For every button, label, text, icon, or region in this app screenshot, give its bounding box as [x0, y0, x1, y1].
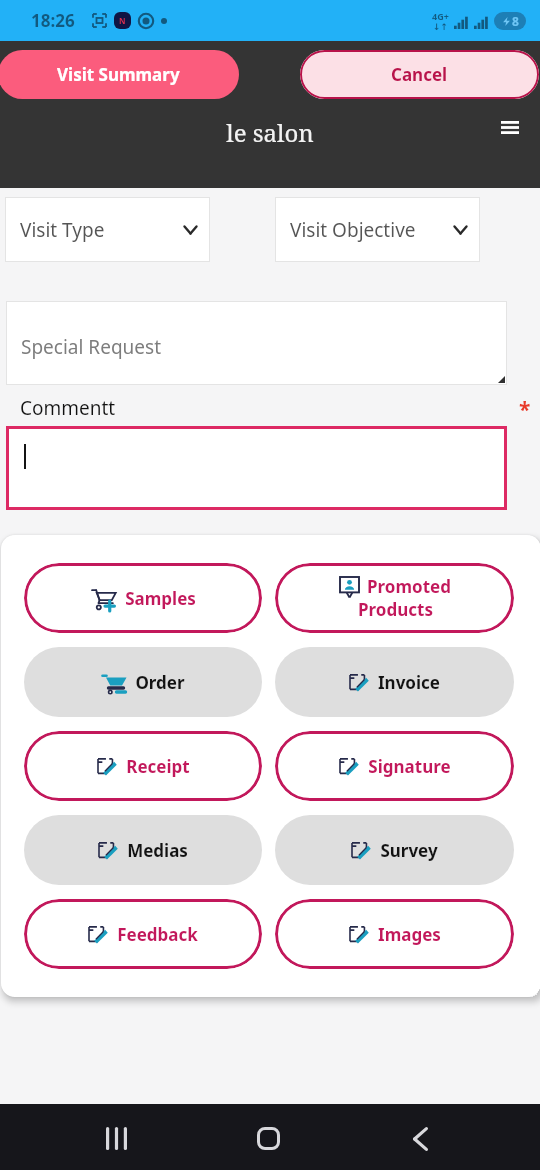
staticText: 18:26	[31, 9, 75, 32]
staticText: Visit Objective	[290, 217, 416, 243]
button[interactable]: Visit Objective	[275, 197, 480, 262]
staticText: Cancel	[391, 63, 448, 86]
button[interactable]: Survey	[275, 815, 514, 885]
button[interactable]: Feedback	[24, 899, 262, 969]
button[interactable]: Back	[396, 1114, 445, 1163]
staticText: Products	[358, 598, 433, 621]
staticText: Receipt	[126, 755, 190, 778]
button[interactable]	[6, 426, 507, 510]
staticText: 8	[512, 13, 519, 29]
staticText: N	[119, 15, 126, 26]
staticText: Signature	[368, 755, 451, 778]
button[interactable]: Samples	[24, 563, 262, 633]
button[interactable]: Signature	[275, 731, 514, 801]
staticText: Visit Type	[20, 217, 105, 243]
staticText: Survey	[380, 839, 438, 862]
staticText: Promoted	[367, 575, 451, 598]
button[interactable]: Promoted	[275, 563, 514, 633]
staticText: ↓↑	[433, 22, 449, 32]
staticText: Samples	[125, 587, 196, 610]
staticText: 4G+	[432, 10, 449, 22]
button[interactable]: Medias	[24, 815, 262, 885]
button[interactable]: Order	[24, 647, 262, 717]
staticText: Special Request	[21, 334, 161, 360]
button[interactable]: Visit Type	[5, 197, 210, 262]
button[interactable]: Visit Summary	[0, 50, 239, 99]
button[interactable]: Images	[275, 899, 514, 969]
button[interactable]: Menu	[493, 111, 526, 144]
staticText: Commentt	[20, 395, 116, 421]
button[interactable]: Home	[244, 1114, 293, 1163]
staticText: Images	[378, 923, 441, 946]
staticText: Order	[135, 671, 185, 694]
button[interactable]: Receipt	[24, 731, 262, 801]
button[interactable]: Invoice	[275, 647, 514, 717]
staticText: Visit Summary	[57, 63, 180, 86]
staticText: Medias	[127, 839, 188, 862]
button[interactable]: Cancel	[300, 50, 539, 99]
button[interactable]: Special Request	[6, 301, 507, 385]
staticText: le salon	[0, 116, 540, 149]
staticText: Invoice	[378, 671, 440, 694]
staticText: *	[519, 395, 531, 424]
button[interactable]: Recents	[92, 1114, 141, 1163]
staticText: Feedback	[117, 923, 198, 946]
